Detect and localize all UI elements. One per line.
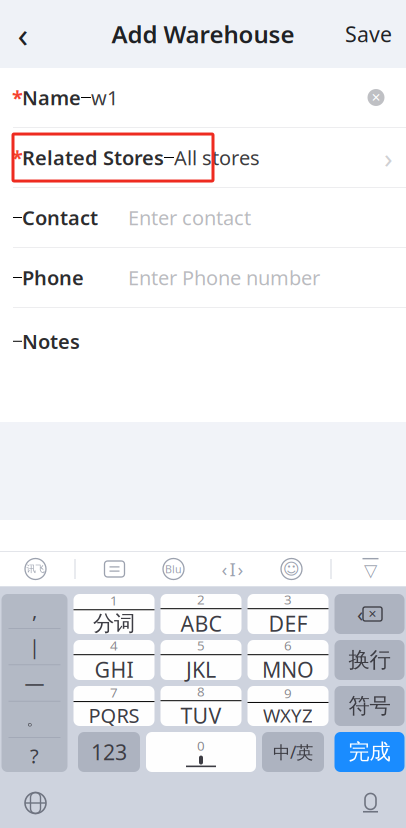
button[interactable]: 123	[78, 732, 140, 772]
staticText: Name	[22, 84, 81, 111]
button[interactable]: 9	[247, 686, 328, 726]
staticText: Add Warehouse	[111, 18, 294, 50]
button[interactable]: Clear text	[359, 80, 393, 114]
staticText: ▽	[364, 560, 377, 580]
button[interactable]: ,	[1, 592, 67, 628]
button[interactable]: 6	[247, 640, 328, 680]
staticText: 。	[26, 710, 42, 729]
staticText: ›	[384, 139, 393, 176]
staticText: 讯飞	[26, 563, 44, 575]
staticText: ,	[32, 597, 37, 623]
button[interactable]: 3	[247, 594, 328, 634]
button[interactable]: 。	[1, 702, 67, 737]
button[interactable]: 8	[160, 686, 241, 726]
staticText: 6	[284, 636, 292, 654]
button[interactable]: Dictate	[343, 781, 397, 825]
staticText: Blu	[165, 562, 182, 576]
button[interactable]: 换行	[334, 640, 404, 680]
staticText: 123	[91, 738, 127, 766]
button[interactable]: Hide keyboard	[350, 552, 390, 586]
staticText: 符号	[348, 693, 390, 719]
button[interactable]: Space	[146, 732, 256, 772]
staticText: ✕	[371, 91, 381, 104]
staticText: GHI	[94, 655, 133, 683]
staticText: 完成	[348, 739, 390, 765]
button[interactable]: Bluetooth	[153, 552, 193, 586]
staticText: I	[229, 557, 235, 581]
staticText: ‹	[17, 11, 28, 57]
staticText: Enter Phone number	[128, 264, 320, 291]
staticText: 换行	[348, 647, 390, 673]
staticText: ☺	[283, 560, 300, 578]
staticText: ✕	[368, 608, 377, 620]
staticText: —	[24, 670, 44, 696]
staticText: 4	[110, 636, 118, 654]
button[interactable]: Input method	[15, 552, 55, 586]
staticText: *	[12, 144, 23, 171]
staticText: 中/英	[273, 740, 313, 763]
staticText: Save	[345, 20, 392, 48]
staticText: 9	[284, 684, 292, 702]
button[interactable]: 4	[73, 640, 154, 680]
button[interactable]: Delete	[334, 594, 404, 634]
button[interactable]: Back	[0, 12, 46, 56]
staticText: w1	[91, 84, 118, 111]
staticText: 1	[110, 591, 118, 609]
staticText: 2	[197, 590, 205, 608]
button[interactable]: 中/英	[262, 732, 324, 772]
staticText: *	[12, 84, 23, 111]
button[interactable]: 2	[160, 594, 241, 634]
button[interactable]: 完成	[334, 732, 404, 772]
staticText: 0	[197, 737, 205, 754]
staticText: Enter contact	[128, 204, 251, 231]
staticText: 8	[197, 682, 205, 700]
button[interactable]: Switch keyboard	[8, 781, 62, 825]
staticText: ‹	[221, 557, 227, 581]
staticText: 5	[197, 636, 205, 654]
button[interactable]: Save	[331, 12, 406, 56]
button[interactable]: ?	[1, 738, 67, 774]
staticText: Related Stores	[22, 144, 164, 171]
staticText: ABC	[180, 609, 221, 637]
staticText: ›	[237, 557, 243, 581]
button[interactable]: 7	[73, 686, 154, 726]
button[interactable]: Messages	[94, 552, 134, 586]
staticText: TUV	[180, 701, 221, 729]
staticText: |	[29, 633, 40, 660]
staticText: DEF	[268, 609, 307, 637]
staticText: 3	[284, 590, 292, 608]
button[interactable]: Move cursor	[212, 552, 252, 586]
button[interactable]: 1	[73, 594, 154, 634]
staticText: Phone	[22, 264, 84, 291]
staticText: JKL	[186, 655, 216, 683]
staticText: ?	[30, 742, 39, 769]
button[interactable]: Emoji	[271, 552, 311, 586]
staticText: PQRS	[88, 702, 139, 729]
staticText: All stores	[174, 144, 260, 171]
staticText: Contact	[22, 204, 98, 231]
staticText: 7	[110, 683, 118, 701]
button[interactable]: 5	[160, 640, 241, 680]
staticText: MNO	[262, 655, 314, 683]
staticText: ‹	[357, 601, 363, 627]
button[interactable]: —	[1, 665, 67, 701]
staticText: WXYZ	[263, 703, 313, 728]
button[interactable]: 符号	[334, 686, 404, 726]
button[interactable]: |	[1, 629, 67, 664]
staticText: 分词	[93, 610, 135, 636]
staticText: Notes	[22, 328, 80, 355]
